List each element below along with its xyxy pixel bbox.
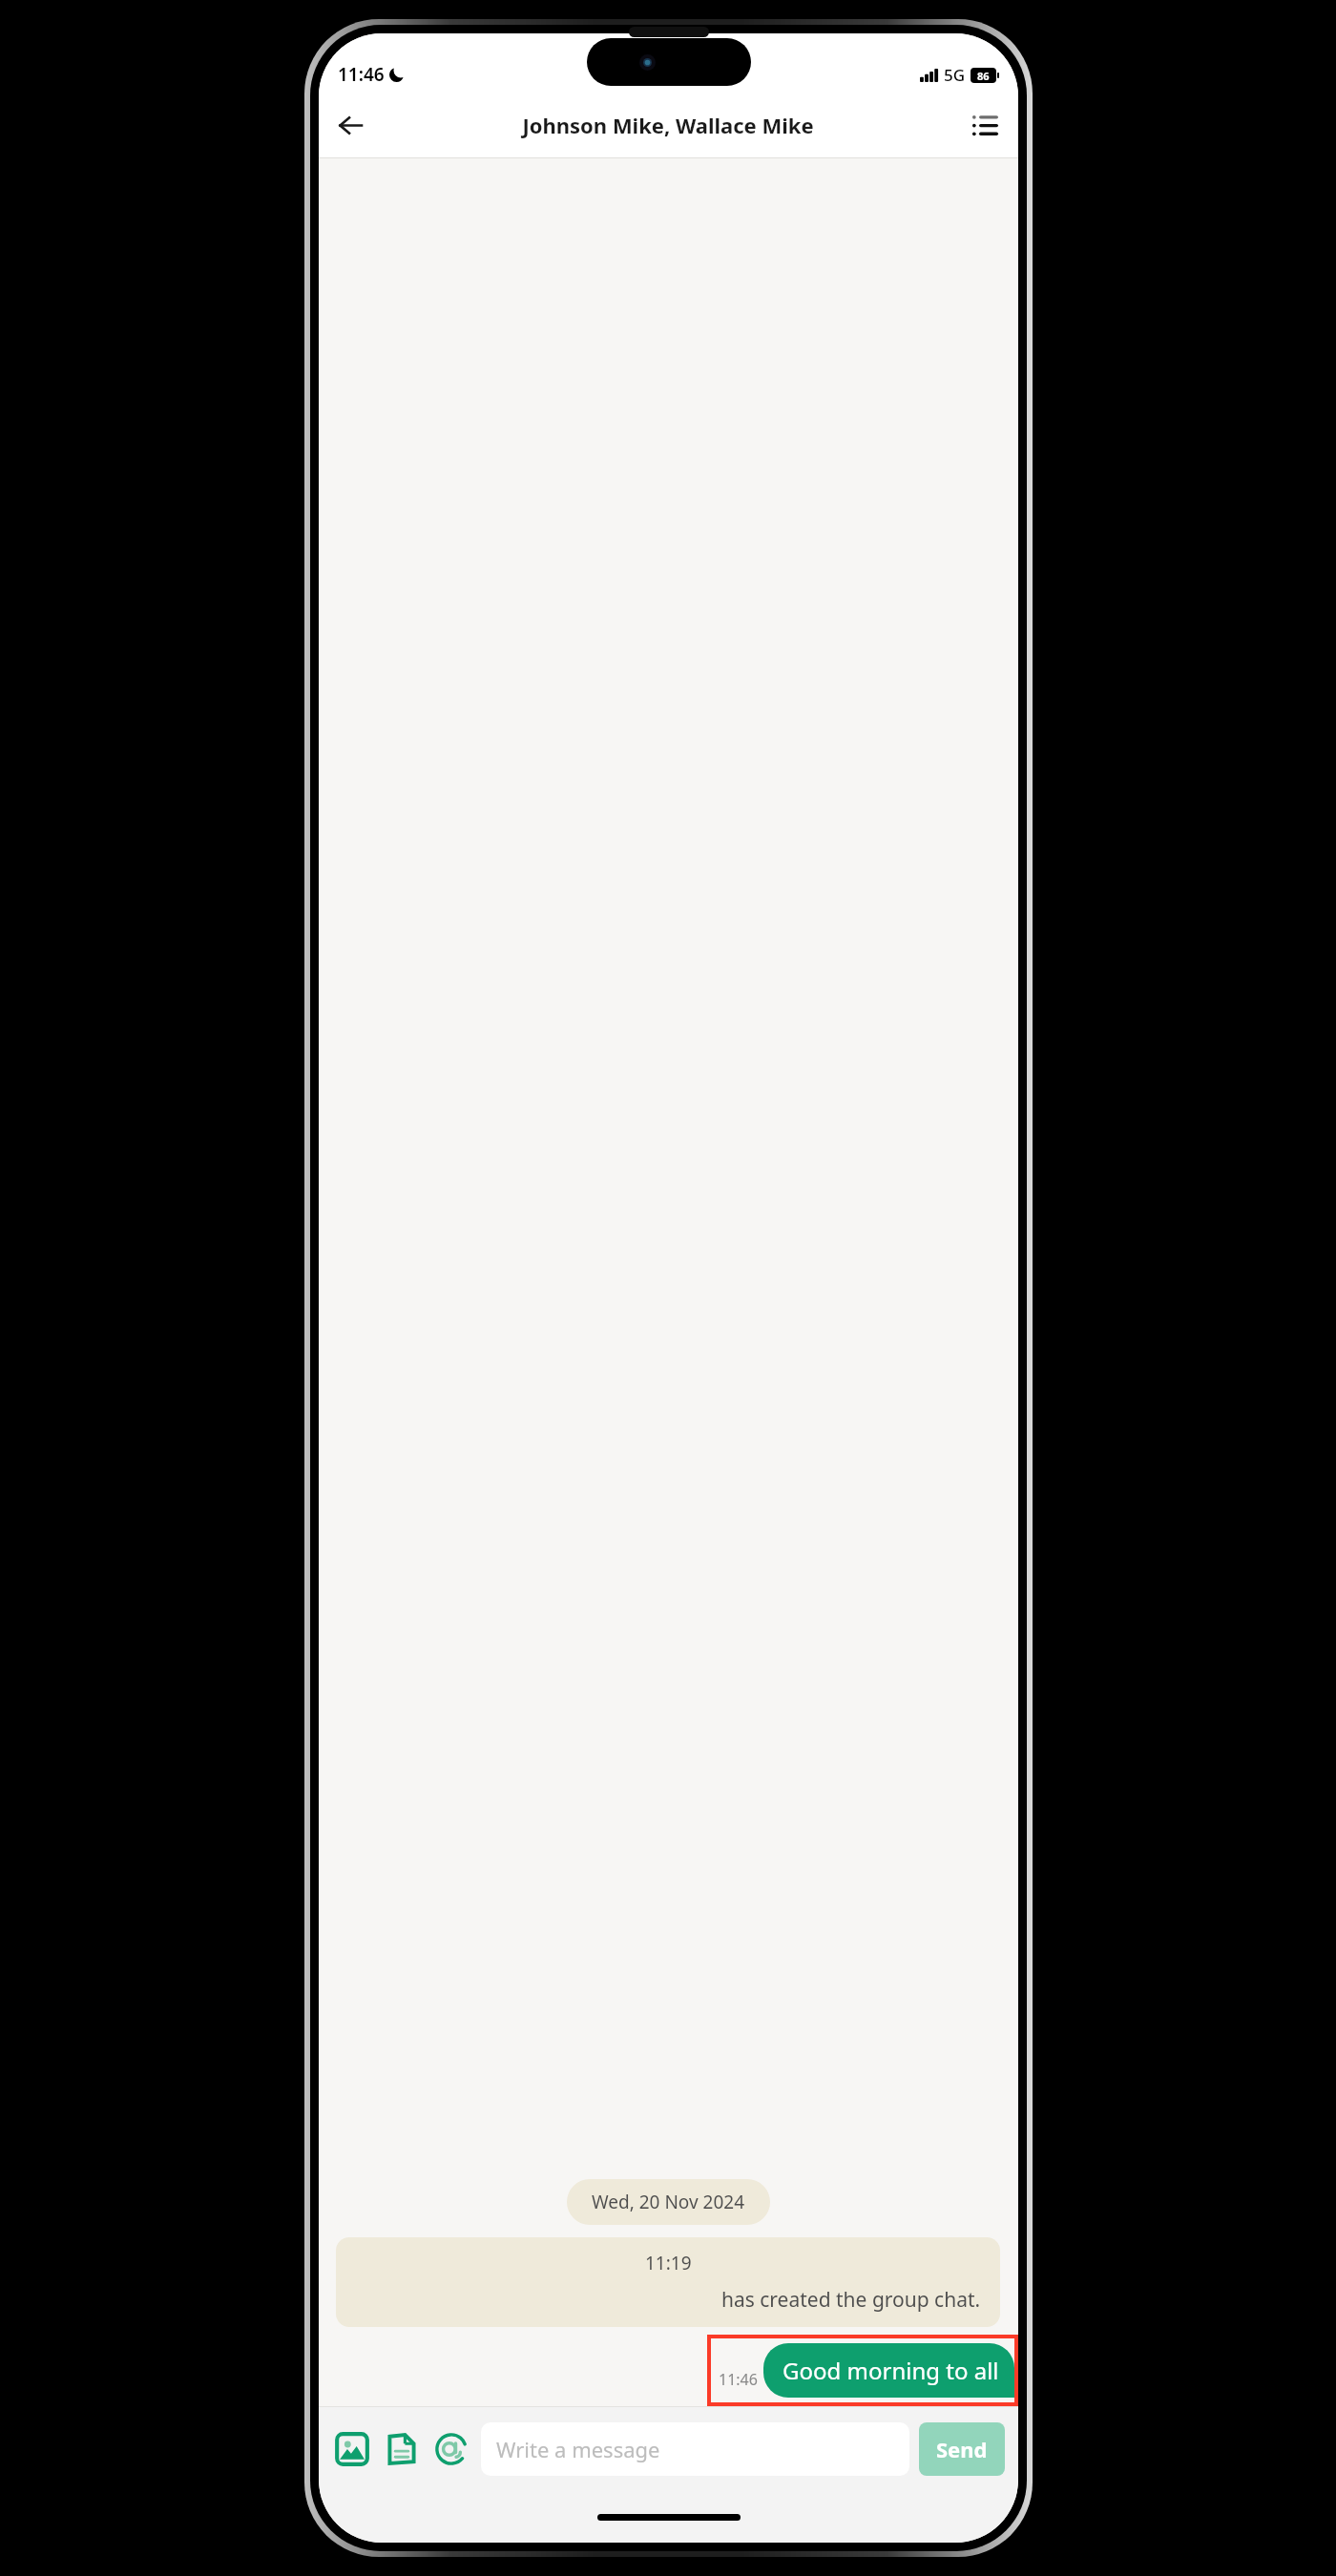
- staticText: 5G: [944, 64, 966, 86]
- button[interactable]: Menu: [963, 103, 1007, 147]
- button[interactable]: Send: [919, 2422, 1005, 2476]
- button[interactable]: Write a message: [481, 2422, 909, 2476]
- button[interactable]: Good morning to all: [763, 2343, 1014, 2398]
- staticText: Wed, 20 Nov 2024: [592, 2190, 745, 2214]
- staticText: Johnson Mike, Wallace Mike: [522, 111, 814, 139]
- button[interactable]: 11:19: [336, 2237, 1000, 2327]
- button[interactable]: Mention: [429, 2427, 473, 2471]
- button[interactable]: Wed, 20 Nov 2024: [567, 2179, 770, 2225]
- staticText: 11:19: [645, 2251, 692, 2275]
- staticText: Write a message: [496, 2435, 660, 2463]
- staticText: has created the group chat.: [721, 2286, 981, 2314]
- button[interactable]: Attach document: [380, 2427, 424, 2471]
- staticText: Good morning to all: [783, 2355, 999, 2386]
- staticText: 86: [977, 69, 990, 83]
- button[interactable]: Attach image: [330, 2427, 374, 2471]
- staticText: Send: [936, 2435, 988, 2463]
- staticText: 11:46: [719, 2369, 758, 2390]
- button[interactable]: Back: [328, 103, 372, 147]
- staticText: 11:46: [338, 62, 385, 87]
